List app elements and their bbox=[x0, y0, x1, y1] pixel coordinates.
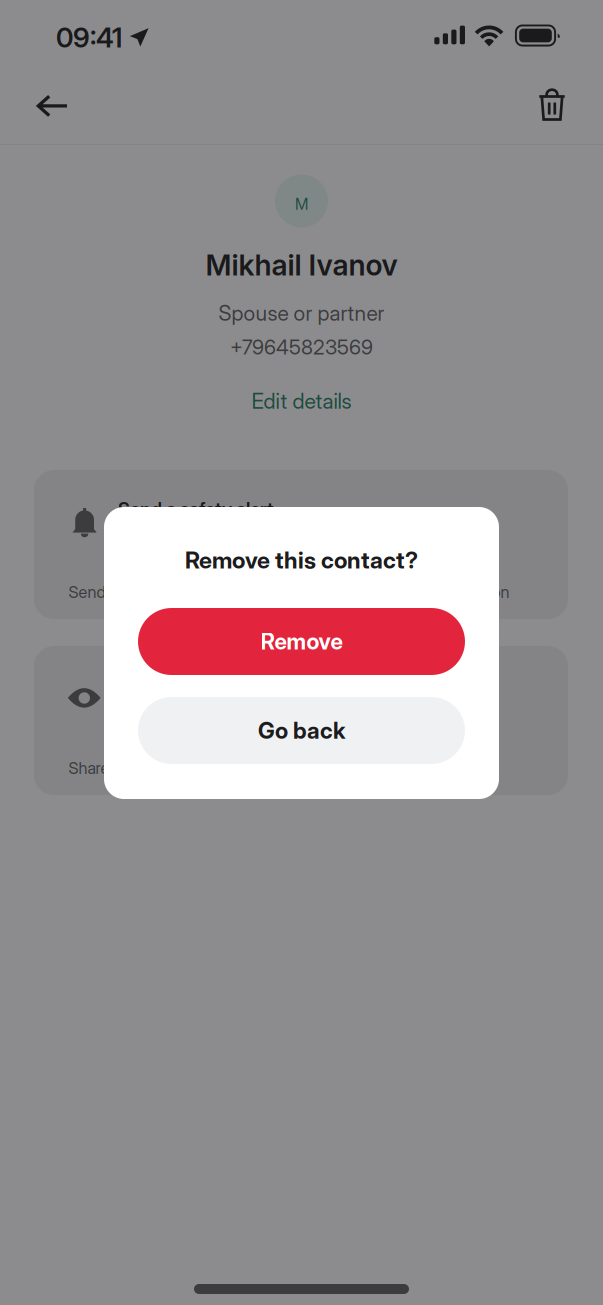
staticText: Send a safety alert bbox=[118, 498, 274, 521]
staticText: Mikhail Ivanov bbox=[205, 248, 397, 282]
staticText: Go back bbox=[258, 717, 345, 744]
button[interactable]: Go back bbox=[138, 697, 465, 764]
staticText: Remove this contact? bbox=[185, 546, 418, 574]
staticText: 09:41 bbox=[56, 21, 122, 54]
button[interactable]: Share my location bbox=[34, 646, 568, 795]
staticText: Remove bbox=[260, 628, 342, 655]
staticText: Send Mikhail a notification that you nee… bbox=[68, 582, 509, 602]
staticText: Spouse or partner bbox=[218, 300, 384, 326]
staticText: Share your live location with Mikhail un… bbox=[68, 758, 466, 778]
staticText: +79645823569 bbox=[230, 335, 373, 359]
button[interactable]: Edit details bbox=[0, 384, 603, 418]
staticText: Share my location bbox=[118, 674, 270, 697]
button[interactable]: Send a safety alert bbox=[34, 470, 568, 619]
staticText: Edit details bbox=[251, 388, 351, 414]
staticText: M bbox=[295, 195, 308, 213]
button[interactable]: Remove bbox=[138, 608, 465, 675]
